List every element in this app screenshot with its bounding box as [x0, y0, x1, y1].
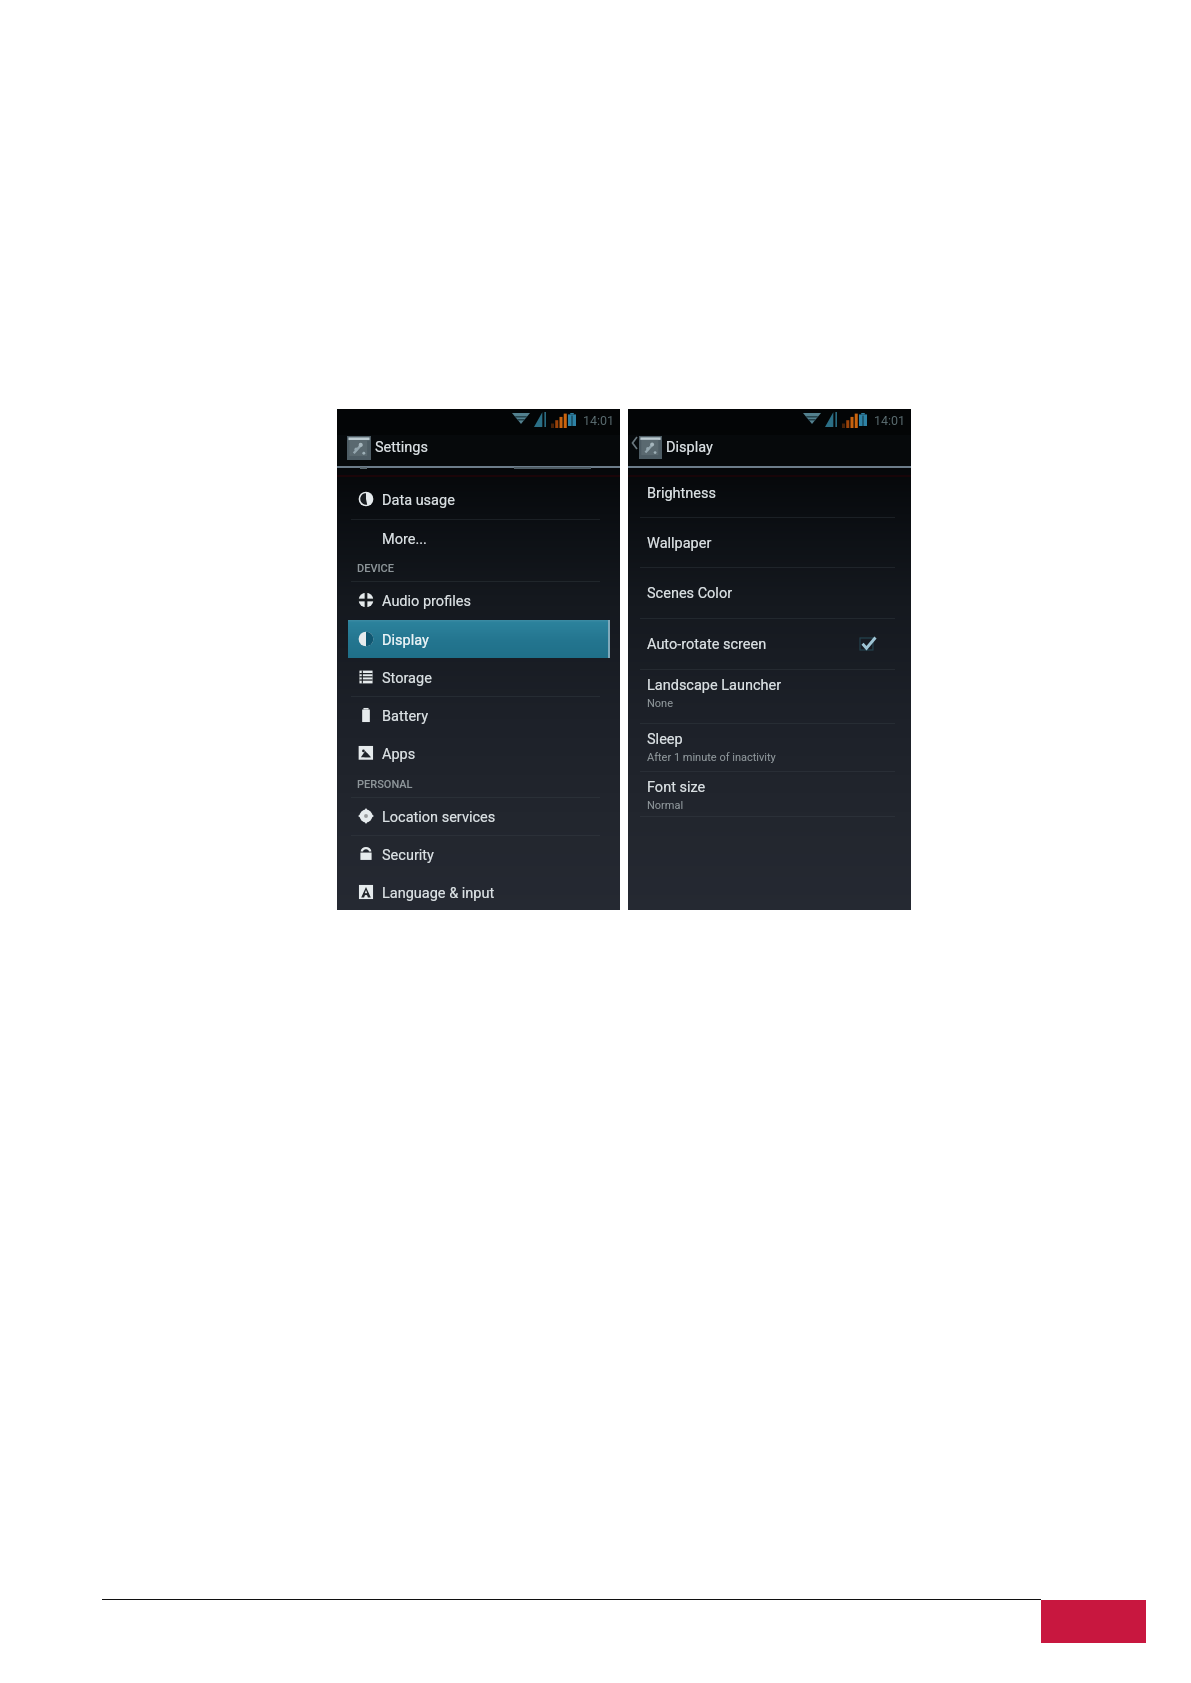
staticText: Brightness: [647, 485, 717, 502]
button[interactable]: Battery: [348, 696, 609, 735]
staticText: Display: [666, 439, 713, 456]
button[interactable]: Location services: [348, 797, 609, 835]
staticText: Settings: [375, 439, 428, 456]
button[interactable]: Apps: [348, 734, 609, 772]
button[interactable]: Auto-rotate screen: [628, 618, 911, 669]
staticText: Auto-rotate screen: [647, 636, 767, 653]
button[interactable]: Audio profiles: [348, 581, 609, 620]
button[interactable]: Sleep: [628, 723, 911, 771]
staticText: None: [647, 697, 674, 710]
staticText: 14:01: [874, 413, 906, 428]
staticText: Audio profiles: [382, 593, 471, 610]
button[interactable]: Storage: [348, 658, 609, 696]
staticText: Sleep: [647, 731, 683, 748]
staticText: More...: [382, 531, 427, 548]
staticText: Location services: [382, 809, 496, 826]
button[interactable]: Security: [348, 835, 609, 873]
button[interactable]: More...: [348, 519, 609, 557]
button[interactable]: Language & input: [348, 873, 609, 911]
button[interactable]: Wallpaper: [628, 517, 911, 568]
button[interactable]: Settings home: [337, 435, 432, 466]
button[interactable]: Navigate up to Settings: [628, 435, 718, 466]
staticText: PERSONAL: [357, 778, 413, 791]
button[interactable]: Brightness: [628, 467, 911, 517]
button[interactable]: Display: [348, 620, 609, 658]
staticText: Normal: [647, 799, 684, 812]
staticText: Battery: [382, 708, 428, 725]
staticText: After 1 minute of inactivity: [647, 751, 776, 764]
staticText: Scenes Color: [647, 585, 733, 602]
staticText: Wallpaper: [647, 535, 712, 552]
staticText: Landscape Launcher: [647, 677, 782, 694]
staticText: Language & input: [382, 885, 495, 902]
button[interactable]: Landscape Launcher: [628, 669, 911, 723]
staticText: Storage: [382, 670, 432, 687]
staticText: Security: [382, 847, 434, 864]
button[interactable]: Scenes Color: [628, 567, 911, 618]
staticText: Apps: [382, 746, 416, 763]
staticText: 14:01: [583, 413, 615, 428]
staticText: DEVICE: [357, 562, 395, 575]
button[interactable]: Data usage: [348, 480, 609, 519]
staticText: Display: [382, 632, 429, 649]
staticText: Data usage: [382, 492, 455, 509]
button[interactable]: Font size: [628, 771, 911, 817]
staticText: Font size: [647, 779, 706, 796]
